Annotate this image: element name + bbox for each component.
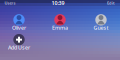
button[interactable]: Add User	[0, 33, 38, 51]
button[interactable]: Edit	[107, 0, 115, 6]
button[interactable]: Users	[4, 0, 15, 6]
staticText: Edit	[107, 0, 115, 6]
staticText: Emma	[52, 24, 68, 31]
staticText: Add User	[8, 44, 30, 51]
staticText: Oliver	[12, 24, 26, 31]
staticText: Users	[4, 0, 15, 6]
button[interactable]: Guest	[82, 14, 120, 32]
staticText: 10:39	[51, 0, 64, 7]
button[interactable]: Emma	[41, 14, 79, 32]
staticText: Guest	[93, 24, 108, 31]
button[interactable]: Oliver	[0, 14, 38, 32]
